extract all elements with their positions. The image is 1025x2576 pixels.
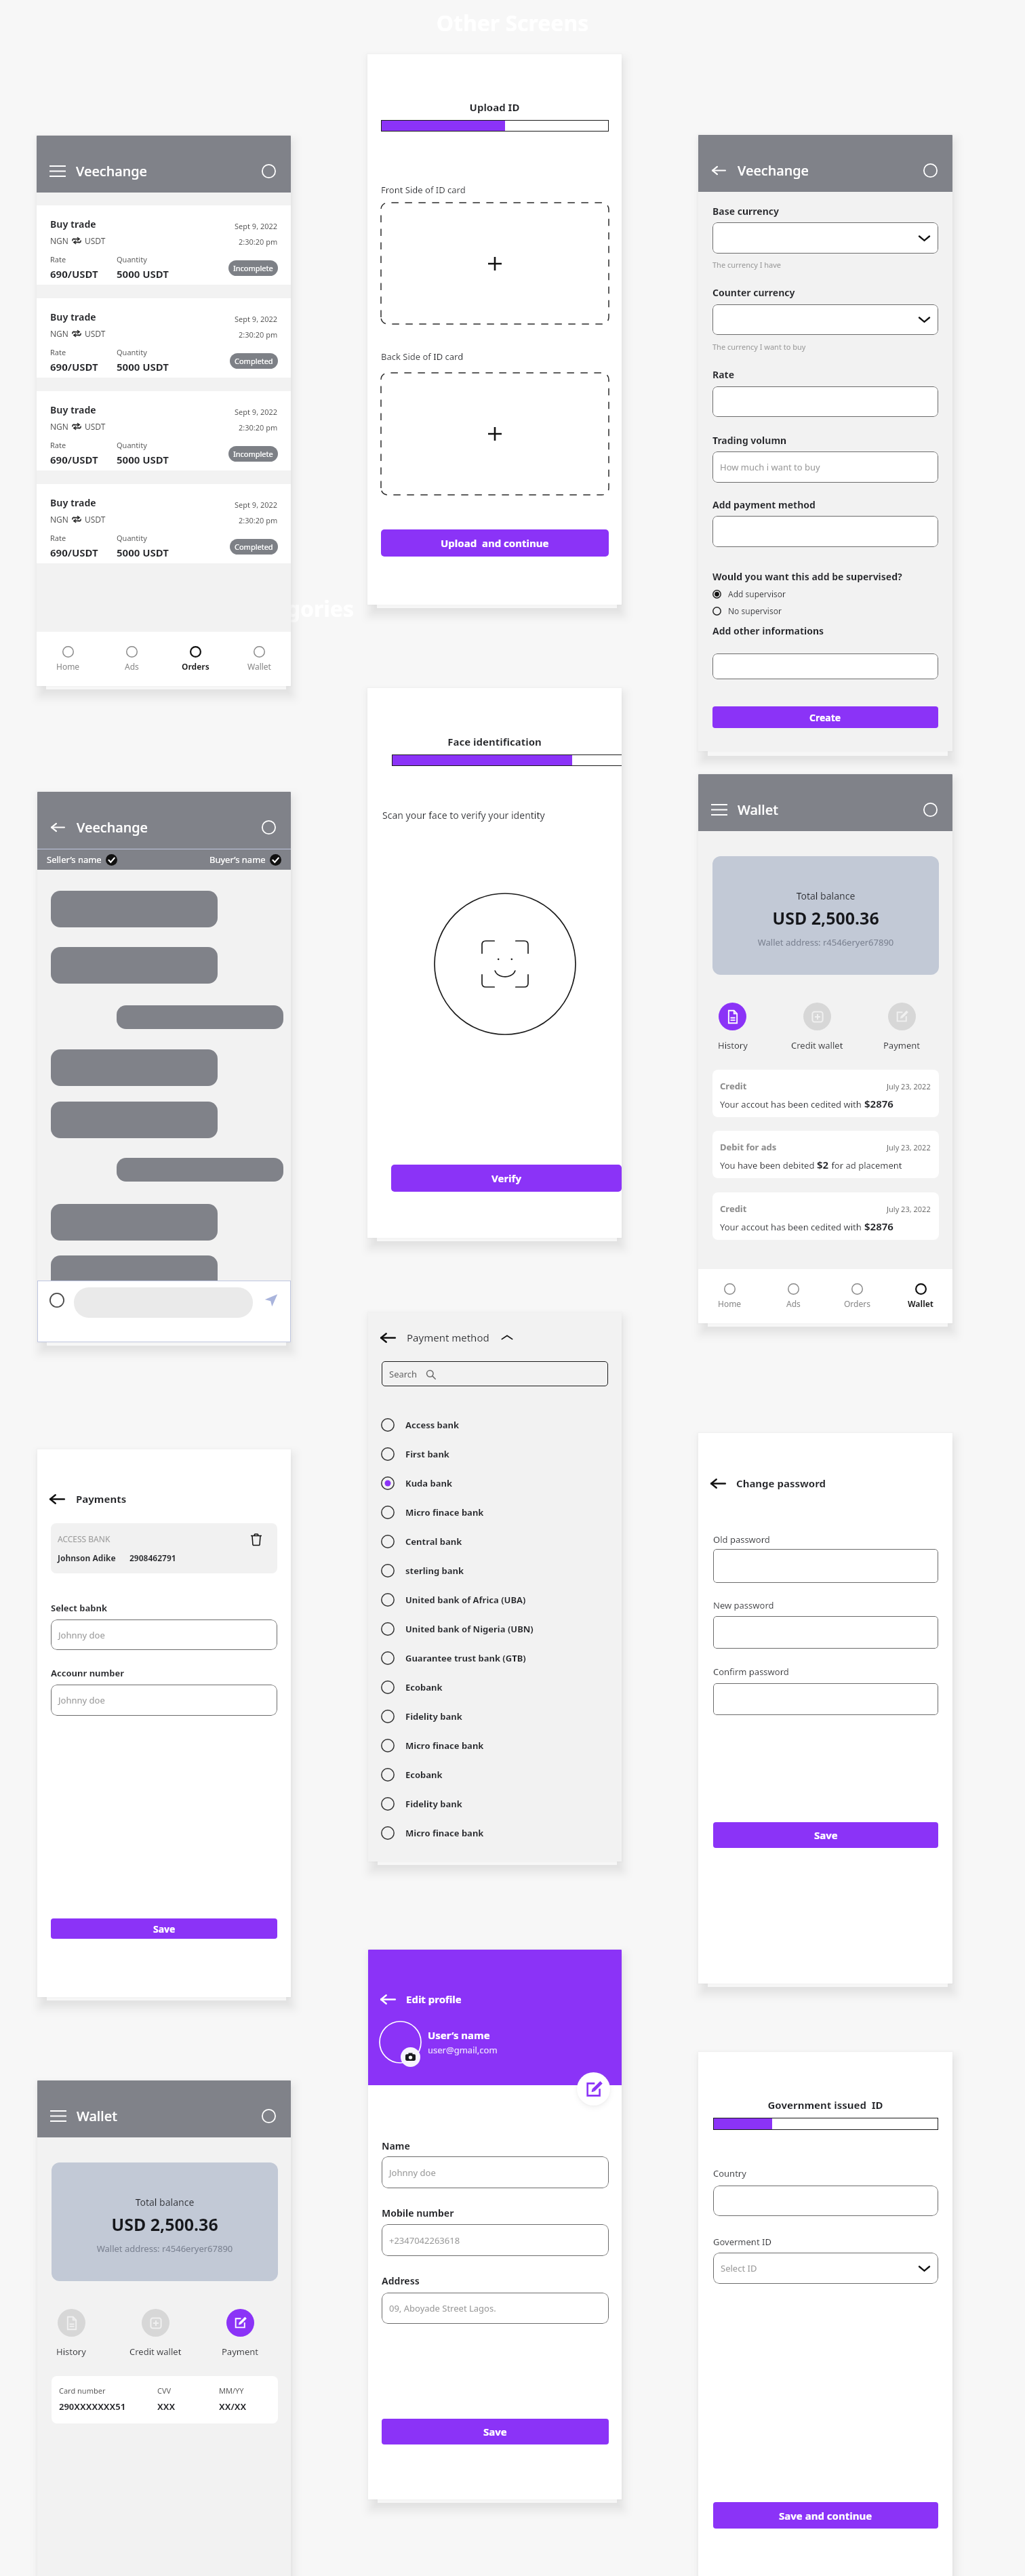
button[interactable]: First bank <box>381 1444 622 1464</box>
button[interactable]: Wallet <box>889 1269 952 1323</box>
button[interactable] <box>712 653 938 679</box>
button[interactable]: Credit <box>712 1070 939 1117</box>
button[interactable]: Upload and continue <box>381 529 609 557</box>
button[interactable] <box>712 386 938 417</box>
button[interactable]: Back <box>712 161 729 179</box>
button[interactable]: Profile <box>260 818 277 836</box>
button[interactable]: Home <box>37 632 100 686</box>
button[interactable]: Ads <box>761 1269 825 1323</box>
button[interactable] <box>713 1549 938 1583</box>
button[interactable]: ACCESS BANK <box>51 1523 277 1573</box>
button[interactable]: Credit wallet <box>775 1003 860 1051</box>
button[interactable]: Save <box>713 1822 938 1848</box>
button[interactable]: Access bank <box>381 1415 622 1435</box>
button[interactable]: Save and continue <box>713 2502 938 2529</box>
button[interactable]: Profile <box>921 161 939 179</box>
staticText: The currency I want to buy <box>712 342 806 352</box>
button[interactable]: 09, Aboyade Street Lagos. <box>382 2293 609 2324</box>
button[interactable]: Micro finace bank <box>381 1735 622 1756</box>
button[interactable]: Buy trade <box>37 391 291 470</box>
button[interactable]: Kuda bank <box>381 1473 622 1493</box>
staticText: Wallet <box>247 661 271 672</box>
button[interactable] <box>712 222 938 254</box>
button[interactable] <box>712 516 938 547</box>
button[interactable]: Menu <box>51 2107 68 2125</box>
button[interactable]: Create <box>712 706 938 728</box>
button[interactable]: History <box>37 2309 113 2358</box>
button[interactable]: Payment <box>860 1003 944 1051</box>
button[interactable]: Total balance <box>52 2162 278 2281</box>
button[interactable]: Wallet <box>227 632 291 686</box>
button[interactable]: Back <box>49 1490 67 1508</box>
button[interactable]: Save <box>382 2419 609 2444</box>
button[interactable]: No supervisor <box>712 603 938 618</box>
button[interactable]: Change photo <box>401 2047 420 2067</box>
button[interactable] <box>712 304 938 335</box>
button[interactable]: Incomplete <box>228 446 278 462</box>
button[interactable]: Johnny doe <box>382 2156 609 2188</box>
button[interactable]: Collapse <box>500 1331 514 1344</box>
button[interactable]: Back <box>380 1329 398 1346</box>
button[interactable]: Orders <box>163 632 227 686</box>
button[interactable]: Total balance <box>712 856 939 975</box>
button[interactable]: Card number <box>52 2376 278 2423</box>
button[interactable]: Ecobank <box>381 1765 622 1785</box>
button[interactable] <box>74 1287 253 1318</box>
staticText: New password <box>713 1599 774 1611</box>
button[interactable]: Debit for ads <box>712 1131 939 1178</box>
button[interactable]: Profile <box>260 162 277 180</box>
button[interactable]: Micro finace bank <box>381 1502 622 1523</box>
button[interactable]: Profile <box>921 801 939 818</box>
button[interactable]: Home <box>698 1269 761 1323</box>
button[interactable]: Menu <box>712 801 729 818</box>
staticText: Country <box>713 2167 746 2179</box>
button[interactable]: Attach <box>48 1291 66 1309</box>
button[interactable]: Johnny doe <box>51 1619 277 1650</box>
button[interactable]: Completed <box>230 353 278 369</box>
button[interactable]: Select ID <box>713 2253 938 2284</box>
staticText: 690/USDT <box>50 546 98 559</box>
button[interactable]: Fidelity bank <box>381 1706 622 1727</box>
button[interactable] <box>713 2186 938 2216</box>
button[interactable]: United bank of Nigeria (UBN) <box>381 1619 622 1639</box>
staticText: USDT <box>85 235 106 246</box>
button[interactable]: Back <box>51 818 68 836</box>
button[interactable]: Search <box>382 1361 608 1386</box>
button[interactable]: Buy trade <box>37 205 291 285</box>
button[interactable]: Guarantee trust bank (GTB) <box>381 1648 622 1668</box>
button[interactable]: Profile <box>260 2107 277 2125</box>
button[interactable]: Edit <box>577 2072 610 2106</box>
button[interactable]: Delete <box>249 1533 263 1546</box>
button[interactable]: Menu <box>50 162 68 180</box>
button[interactable]: Incomplete <box>228 260 278 276</box>
button[interactable] <box>713 1683 938 1715</box>
button[interactable] <box>713 1616 938 1649</box>
button[interactable]: Verify <box>391 1165 622 1192</box>
button[interactable]: Micro finace bank <box>381 1823 622 1843</box>
button[interactable]: Fidelity bank <box>381 1794 622 1814</box>
button[interactable]: Johnny doe <box>51 1685 277 1716</box>
button[interactable]: United bank of Africa (UBA) <box>381 1590 622 1610</box>
staticText: History <box>718 1039 748 1051</box>
button[interactable]: Back <box>380 1990 398 2008</box>
button[interactable]: Orders <box>825 1269 889 1323</box>
button[interactable]: Credit <box>712 1192 939 1240</box>
button[interactable]: Back <box>710 1474 728 1492</box>
button[interactable]: Completed <box>230 539 278 555</box>
button[interactable]: History <box>698 1003 775 1051</box>
button[interactable]: Buy trade <box>37 298 291 378</box>
staticText: Face identification <box>367 735 622 748</box>
button[interactable]: Ads <box>100 632 163 686</box>
button[interactable]: Add supervisor <box>712 586 938 601</box>
button[interactable]: Send <box>262 1291 280 1309</box>
button[interactable]: sterling bank <box>381 1561 622 1581</box>
button[interactable]: +2347042263618 <box>382 2224 609 2256</box>
button[interactable]: Ecobank <box>381 1677 622 1697</box>
staticText: user@gmail,com <box>428 2044 498 2056</box>
button[interactable]: How much i want to buy <box>712 451 938 483</box>
button[interactable]: Payment <box>198 2309 283 2358</box>
button[interactable]: Save <box>51 1918 277 1939</box>
button[interactable]: Buy trade <box>37 484 291 563</box>
button[interactable]: Central bank <box>381 1531 622 1552</box>
button[interactable]: Credit wallet <box>113 2309 198 2358</box>
